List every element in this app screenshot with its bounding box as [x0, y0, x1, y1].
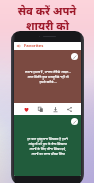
- staticText: अपनों के लिए जीना सिखा दर्द,: [29, 146, 66, 150]
- staticText: अगर मिलेंगे कुछ मजबूरी✖ नहीं तो: [27, 74, 69, 78]
- button[interactable]: रूठना हमारा❣, मनाना तेरी✿ आदत...: [14, 50, 81, 103]
- staticText: हर बात मुस्कुराना सिखाया है हमने: [27, 136, 68, 140]
- button[interactable]: Copy: [35, 104, 45, 114]
- button[interactable]: Download: [50, 104, 60, 114]
- button[interactable]: Edit: [71, 53, 78, 60]
- button[interactable]: Edit: [71, 118, 78, 125]
- staticText: अपनों का बनना सीखा लिया: [31, 151, 65, 155]
- staticText: Favorites: [24, 43, 44, 49]
- button[interactable]: Back: [16, 43, 22, 49]
- staticText: शायरी को: [26, 18, 69, 33]
- staticText: रूठना हमारा❣, मनाना तेरी✿ आदत...: [25, 69, 71, 73]
- staticText: आंसुओं को छुप के रोना सिखाया: [28, 141, 67, 145]
- staticText: सेव करें अपने पसंदीदा: [0, 3, 94, 18]
- button[interactable]: हर बात मुस्कुराना सिखाया है हमने: [14, 115, 81, 176]
- button[interactable]: Share: [64, 104, 74, 114]
- button[interactable]: Favorite: [21, 104, 31, 114]
- staticText: हमसे बातें❀...: [39, 79, 57, 83]
